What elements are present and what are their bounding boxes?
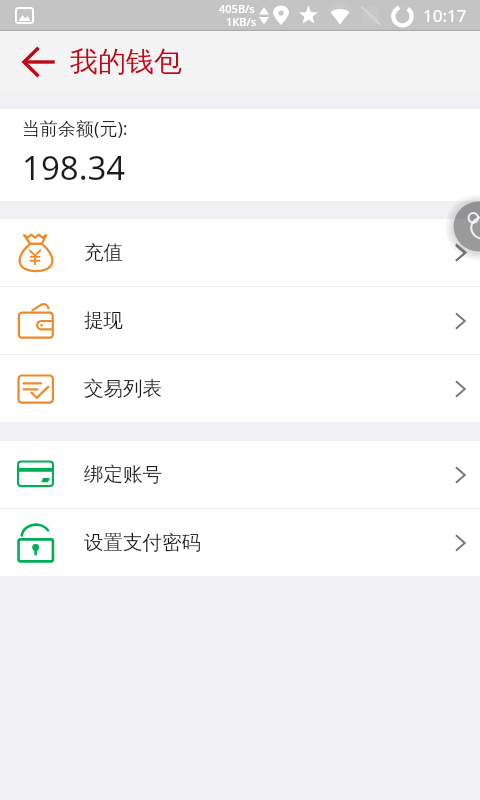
staticText: 198.34 — [22, 145, 126, 190]
button[interactable]: Back — [13, 37, 63, 87]
other: Assistant — [0, 0, 480, 800]
button[interactable]: 提现 — [0, 287, 480, 354]
button[interactable]: 绑定账号 — [0, 441, 480, 508]
staticText: 1KB/s — [226, 14, 257, 29]
staticText: 绑定账号 — [84, 462, 162, 487]
staticText: 交易列表 — [84, 376, 162, 401]
staticText: 当前余额(元): — [22, 116, 128, 141]
staticText: 提现 — [84, 308, 123, 333]
button[interactable]: 交易列表 — [0, 355, 480, 422]
staticText: 我的钱包 — [70, 44, 182, 79]
staticText: 10:17 — [423, 4, 467, 27]
staticText: 设置支付密码 — [84, 530, 201, 555]
button[interactable]: 设置支付密码 — [0, 509, 480, 576]
staticText: 405B/s — [219, 1, 255, 16]
button[interactable]: 充值 — [0, 219, 480, 286]
staticText: 充值 — [84, 240, 123, 265]
